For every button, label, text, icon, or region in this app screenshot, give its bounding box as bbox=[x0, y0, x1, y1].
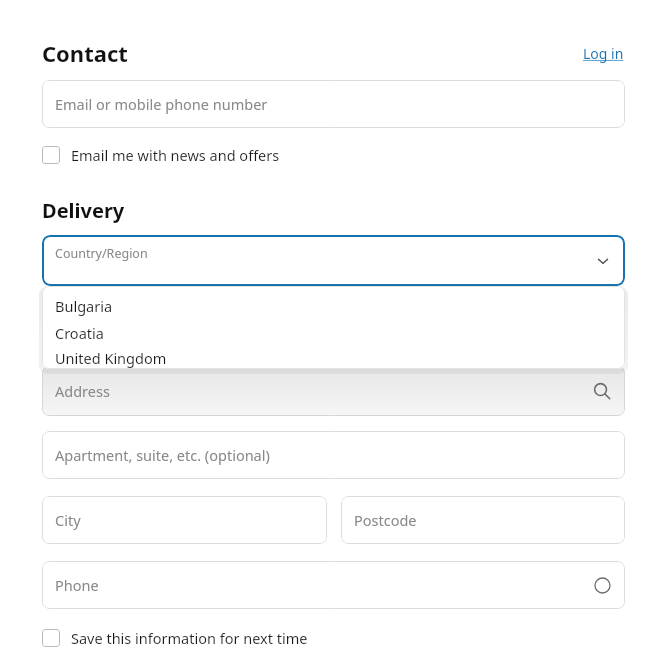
button[interactable]: Email me with news and offers bbox=[42, 145, 280, 165]
staticText: Phone bbox=[55, 575, 99, 595]
button[interactable]: Email or mobile phone number bbox=[42, 80, 625, 128]
button[interactable]: Apartment, suite, etc. (optional) bbox=[42, 431, 625, 479]
button[interactable]: Postcode bbox=[341, 496, 625, 544]
button[interactable]: Bulgaria bbox=[42, 292, 625, 319]
button[interactable]: United Kingdom bbox=[42, 346, 625, 369]
button[interactable]: City bbox=[42, 496, 327, 544]
staticText: Country/Region bbox=[55, 245, 148, 262]
staticText: Email or mobile phone number bbox=[55, 94, 268, 114]
other: Phone help bbox=[594, 577, 611, 594]
staticText: Croatia bbox=[55, 323, 104, 343]
staticText: Postcode bbox=[354, 510, 417, 530]
staticText: Contact bbox=[42, 38, 128, 68]
staticText: Log in bbox=[583, 44, 624, 63]
staticText: Save this information for next time bbox=[71, 628, 308, 648]
staticText: Bulgaria bbox=[55, 296, 113, 316]
staticText: Email me with news and offers bbox=[71, 145, 280, 165]
other: Search address bbox=[593, 382, 611, 400]
button[interactable]: Country/Region bbox=[42, 235, 625, 286]
staticText: Address bbox=[55, 381, 110, 401]
button[interactable]: Phone bbox=[42, 561, 625, 609]
staticText: Delivery bbox=[42, 197, 125, 224]
button[interactable]: Save this information for next time bbox=[42, 628, 308, 648]
other: Open country list bbox=[596, 254, 610, 268]
button[interactable]: Address bbox=[42, 366, 625, 416]
button[interactable]: Croatia bbox=[42, 319, 625, 346]
staticText: United Kingdom bbox=[55, 348, 167, 368]
staticText: City bbox=[55, 510, 81, 530]
staticText: Apartment, suite, etc. (optional) bbox=[55, 445, 270, 465]
button[interactable]: Log in bbox=[583, 44, 624, 63]
